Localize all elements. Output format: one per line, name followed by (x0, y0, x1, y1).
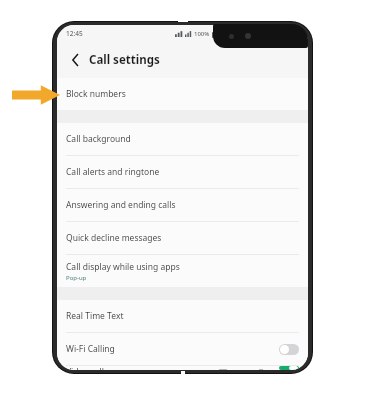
button[interactable]: Answering and ending calls (57, 189, 308, 221)
staticText: 12:45 (66, 29, 83, 38)
button[interactable]: Video call (57, 366, 308, 370)
staticText: Quick decline messages (66, 232, 162, 244)
button[interactable]: Quick decline messages (57, 222, 308, 254)
button[interactable]: Off (279, 344, 299, 355)
staticText: Answering and ending calls (66, 199, 176, 211)
staticText: Real Time Text (66, 310, 124, 322)
staticText: Block numbers (66, 88, 126, 100)
button[interactable]: Real Time Text (57, 300, 308, 332)
staticText: Call settings (89, 52, 160, 68)
staticText: Wi-Fi Calling (66, 343, 115, 355)
staticText: Video call (66, 366, 104, 370)
button[interactable]: Wi-Fi Calling (57, 333, 308, 365)
button[interactable]: Call display while using apps (57, 255, 308, 287)
staticText: Call alerts and ringtone (66, 166, 160, 178)
staticText: Call background (66, 133, 131, 145)
button[interactable]: Back (66, 51, 84, 69)
staticText: 100% (194, 30, 210, 38)
button[interactable]: Block numbers (57, 78, 308, 110)
staticText: Pop-up (66, 274, 87, 282)
button[interactable]: Call background (57, 123, 308, 155)
staticText: Call display while using apps (66, 261, 180, 273)
button[interactable]: Call alerts and ringtone (57, 156, 308, 188)
button[interactable]: On (279, 366, 299, 370)
